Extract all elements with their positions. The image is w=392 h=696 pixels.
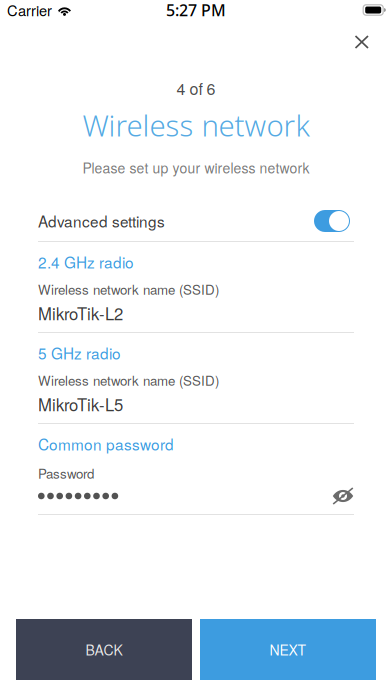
staticText: NEXT: [269, 639, 306, 659]
staticText: Advanced settings: [38, 210, 165, 232]
staticText: Password: [38, 463, 94, 483]
staticText: MikroTik-L2: [38, 301, 123, 325]
staticText: 5:27 PM: [166, 0, 226, 21]
staticText: Wireless network: [82, 105, 309, 145]
staticText: Please set up your wireless network: [82, 157, 309, 177]
staticText: Wireless network name (SSID): [38, 370, 219, 390]
staticText: Wireless network name (SSID): [38, 279, 219, 299]
button[interactable]: NEXT: [200, 619, 376, 680]
button[interactable]: BACK: [16, 619, 192, 680]
staticText: MikroTik-L5: [38, 392, 123, 416]
button[interactable]: Show password: [332, 488, 354, 503]
button[interactable]: Close: [345, 26, 378, 58]
staticText: Carrier: [7, 0, 52, 20]
staticText: 5 GHz radio: [38, 342, 121, 364]
staticText: Common password: [38, 433, 174, 455]
button[interactable]: Advanced settings: [38, 188, 354, 241]
staticText: 4 of 6: [176, 76, 215, 99]
staticText: 2.4 GHz radio: [38, 251, 134, 273]
staticText: BACK: [85, 639, 122, 659]
